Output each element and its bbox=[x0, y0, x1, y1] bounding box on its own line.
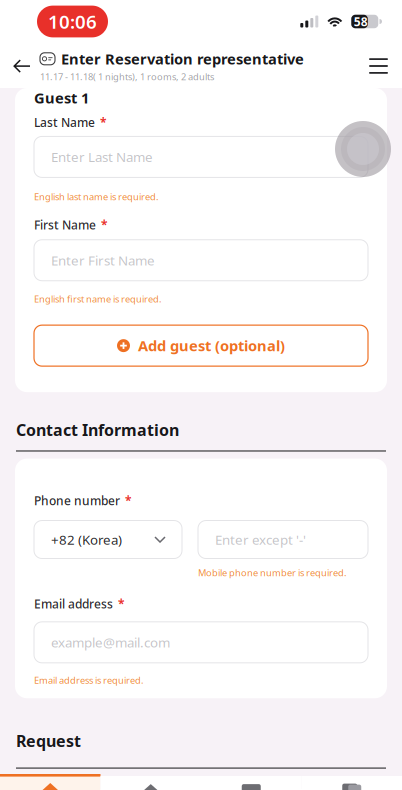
staticText: 58 bbox=[354, 13, 368, 29]
button[interactable]: More bbox=[301, 776, 402, 790]
staticText: Enter Reservation representative bbox=[61, 49, 304, 69]
button[interactable]: Home bbox=[0, 776, 100, 790]
staticText: 11.17 - 11.18( 1 nights), 1 rooms, 2 adu… bbox=[40, 70, 214, 83]
staticText: Mobile phone number is required. bbox=[198, 566, 347, 579]
staticText: Contact Information bbox=[16, 419, 179, 440]
button[interactable]: My Page bbox=[201, 776, 301, 790]
staticText: +82 (Korea) bbox=[51, 531, 122, 548]
staticText: First Name bbox=[34, 217, 96, 233]
staticText: example@mail.com bbox=[51, 633, 170, 651]
staticText: 10:06 bbox=[48, 9, 97, 34]
staticText: Add guest (optional) bbox=[138, 336, 285, 355]
staticText: English first name is required. bbox=[34, 293, 162, 305]
staticText: Enter Last Name bbox=[51, 148, 153, 166]
staticText: Request bbox=[16, 730, 81, 751]
staticText: Enter except '-' bbox=[215, 531, 306, 548]
button[interactable]: Add guest (optional) bbox=[34, 325, 368, 366]
staticText: Enter First Name bbox=[51, 251, 155, 269]
staticText: Last Name bbox=[34, 114, 95, 130]
staticText: Email address is required. bbox=[34, 674, 144, 686]
staticText: English last name is required. bbox=[34, 190, 159, 203]
staticText: * bbox=[125, 493, 132, 508]
staticText: * bbox=[100, 114, 107, 130]
button[interactable]: Menu bbox=[355, 45, 402, 86]
button[interactable]: Back bbox=[0, 46, 40, 85]
staticText: Guest 1 bbox=[34, 88, 89, 107]
button[interactable]: Reservations bbox=[100, 776, 201, 790]
staticText: * bbox=[118, 596, 125, 612]
staticText: Email address bbox=[34, 596, 113, 612]
staticText: Phone number bbox=[34, 493, 120, 508]
staticText: * bbox=[101, 217, 108, 233]
